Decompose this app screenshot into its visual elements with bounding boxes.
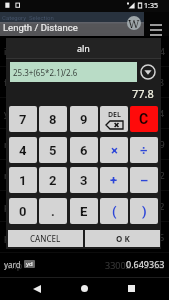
button[interactable]: 6 (70, 137, 98, 163)
button[interactable]: C (130, 106, 158, 132)
staticText: ÷ (140, 143, 148, 158)
staticText: 6 (80, 143, 88, 158)
button[interactable]: mile (4, 129, 165, 159)
staticText: yd (26, 260, 33, 268)
button[interactable]: foot (4, 67, 165, 97)
staticText: 77.8 (132, 86, 154, 100)
button[interactable]: Wikipedia (127, 16, 141, 30)
staticText: 33002.992126 (105, 259, 165, 271)
button[interactable]: + (100, 167, 128, 193)
staticText: Category Selection (2, 14, 54, 21)
staticText: DEL (108, 110, 121, 120)
staticText: yard (4, 259, 21, 270)
staticText: 30.48 (141, 76, 165, 88)
button[interactable]: yard (4, 98, 165, 128)
button[interactable]: Home (72, 277, 96, 300)
staticText: pt (4, 200, 13, 212)
staticText: 1 (19, 173, 27, 188)
staticText: 7 (19, 112, 27, 127)
staticText: 6 (159, 231, 165, 243)
staticText: 0.9144 (136, 107, 165, 119)
staticText: 1609 (144, 138, 165, 150)
staticText: C (139, 111, 149, 127)
staticText: 4 (19, 143, 27, 158)
staticText: 72 (154, 200, 165, 212)
button[interactable]: Show history (140, 64, 156, 80)
button[interactable]: 25.3+(65*2.1)/2.6 (10, 62, 137, 82)
button[interactable]: 4 (9, 137, 37, 163)
button[interactable]: twip (4, 253, 165, 277)
button[interactable]: yard (4, 256, 165, 272)
staticText: nmi (4, 169, 21, 181)
button[interactable]: E (70, 198, 98, 224)
button[interactable]: Back (25, 277, 49, 300)
button[interactable]: CANCEL (8, 230, 83, 247)
staticText: CANCEL (30, 233, 61, 244)
staticText: + (110, 173, 118, 188)
button[interactable]: 5 (39, 137, 67, 163)
button[interactable]: 7 (9, 106, 37, 132)
staticText: 0 (19, 204, 27, 219)
button[interactable]: ) (130, 198, 158, 224)
button[interactable]: More options (145, 12, 169, 36)
button[interactable]: 0 (9, 198, 37, 224)
button[interactable]: 2 (39, 167, 67, 193)
staticText: 2 (49, 173, 57, 188)
staticText: twip (4, 259, 23, 271)
staticText: yard (4, 107, 23, 119)
button[interactable]: 8 (39, 106, 67, 132)
button[interactable]: pt (4, 191, 165, 221)
staticText: Length / Distance (3, 22, 78, 33)
staticText: 0.649363 (126, 258, 165, 270)
staticText: pica (4, 231, 22, 243)
staticText: W (128, 16, 140, 30)
button[interactable]: nmi (4, 160, 165, 190)
staticText: 1852 (144, 169, 165, 181)
staticText: . (51, 204, 55, 219)
staticText: 8 (49, 112, 57, 127)
button[interactable]: O K (85, 230, 160, 247)
staticText: ( (112, 204, 117, 219)
button[interactable]: pica (4, 222, 165, 252)
staticText: foot (4, 76, 22, 88)
button[interactable]: × (100, 137, 128, 163)
button[interactable]: 3 (70, 167, 98, 193)
staticText: × (111, 143, 118, 158)
button[interactable]: ÷ (130, 137, 158, 163)
button[interactable]: 9 (70, 106, 98, 132)
staticText: O K (116, 233, 130, 244)
staticText: – (140, 173, 149, 188)
staticText: 25.3+(65*2.1)/2.6 (13, 67, 78, 78)
button[interactable]: – (130, 167, 158, 193)
staticText: mile (4, 138, 23, 150)
button[interactable]: inch (4, 36, 165, 66)
button[interactable]: ( (100, 198, 128, 224)
staticText: aln (77, 42, 90, 54)
button[interactable]: Category selection (0, 12, 144, 36)
button[interactable]: Recent apps (119, 277, 143, 300)
staticText: ) (142, 204, 147, 219)
staticText: 1:35 (144, 1, 158, 11)
button[interactable]: . (39, 198, 67, 224)
staticText: E (80, 204, 88, 219)
staticText: 9 (80, 112, 88, 127)
staticText: 3 (80, 173, 88, 188)
staticText: inch (4, 45, 22, 57)
staticText: 5 (49, 143, 57, 158)
button[interactable]: 1 (9, 167, 37, 193)
staticText: 2.54 (147, 45, 165, 57)
button[interactable]: Delete (100, 106, 128, 132)
